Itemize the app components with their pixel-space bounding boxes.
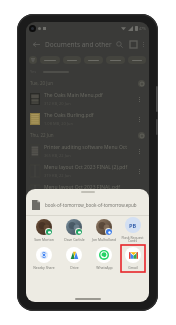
staticText: Flask Request Cards <box>119 235 146 243</box>
staticText: Tue, 20 Jun <box>30 80 54 86</box>
staticText: Menu layout Oct 2023 FINAL (2).pdf <box>44 164 128 171</box>
button[interactable]: More options <box>133 205 145 217</box>
staticText: 47% <box>139 26 146 31</box>
staticText: Printer auditing software Menu Oct 2023.… <box>44 144 133 151</box>
button[interactable] <box>29 56 37 64</box>
staticText: Drive <box>70 265 79 270</box>
button[interactable]: The Oaks Burling.pdf <box>26 109 149 129</box>
staticText: 104 KB, 22 Jun <box>44 233 71 238</box>
button[interactable]: More options <box>133 225 145 237</box>
staticText: PB <box>129 222 137 229</box>
button[interactable] <box>128 56 146 64</box>
staticText: 204 KB, 22 Jun <box>44 213 71 218</box>
button[interactable]: Drive <box>59 246 89 271</box>
button[interactable] <box>106 56 125 64</box>
button[interactable]: Menu layout Oct 2023 FINAL.pdf <box>26 181 149 201</box>
staticText: Menu notes.pdf <box>44 224 82 231</box>
button[interactable]: Gmail <box>119 246 146 271</box>
button[interactable]: Select all <box>138 80 145 87</box>
staticText: 319 KB, 22 Jun <box>44 173 71 178</box>
staticText: The Oaks Burling.pdf <box>44 112 94 119</box>
button[interactable]: Select all <box>138 132 145 139</box>
staticText: 365 KB, 22 Jun <box>44 153 71 158</box>
button[interactable]: More options <box>133 113 145 125</box>
staticText: Jon Mulholland <box>92 237 116 242</box>
staticText: book-of-tomorrow_book-of-tomorrow.epub <box>45 202 137 208</box>
button[interactable]: Jon Mulholland <box>89 219 119 242</box>
staticText: Documents and other <box>45 40 112 49</box>
button[interactable]: Menu sheet v2.pdf <box>26 201 149 221</box>
button[interactable]: More options <box>133 145 145 157</box>
staticText: Thu, 22 Jun <box>30 132 54 138</box>
button[interactable] <box>40 56 60 64</box>
button[interactable]: More options <box>133 93 145 105</box>
button[interactable]: More options <box>140 37 146 51</box>
staticText: The Oaks Main Menu.pdf <box>44 92 103 99</box>
button[interactable]: The Oaks Main Menu.pdf <box>26 89 149 109</box>
staticText: Dave Carlisle <box>64 237 85 242</box>
staticText: Gmail <box>128 265 138 270</box>
button[interactable]: WhatsApp <box>89 246 119 271</box>
button[interactable]: Dave Carlisle <box>59 219 89 242</box>
staticText: 312 KB, 20 Jun <box>44 101 71 106</box>
button[interactable] <box>84 56 103 64</box>
button[interactable]: Switch view <box>126 37 140 51</box>
staticText: Yes <box>30 69 37 74</box>
staticText: Nearby Share <box>33 265 55 270</box>
button[interactable]: PB <box>119 216 146 244</box>
button[interactable]: Search <box>112 37 126 51</box>
button[interactable]: Nearby Share <box>29 246 59 271</box>
button[interactable]: Menu notes.pdf <box>26 221 149 241</box>
button[interactable]: More options <box>133 165 145 177</box>
staticText: Sam Morton <box>34 237 54 242</box>
staticText: Menu layout Oct 2023 FINAL.pdf <box>44 184 120 191</box>
button[interactable]: More options <box>133 185 145 197</box>
staticText: Menu sheet v2.pdf <box>44 204 88 211</box>
staticText: 1.08 MB, 20 Jun <box>44 121 73 126</box>
button[interactable]: Printer auditing software Menu Oct 2023.… <box>26 141 149 161</box>
button[interactable] <box>63 56 81 64</box>
button[interactable]: Sam Morton <box>29 219 59 242</box>
staticText: WhatsApp <box>96 265 113 270</box>
button[interactable]: Back <box>29 37 43 51</box>
button[interactable]: Menu layout Oct 2023 FINAL (2).pdf <box>26 161 149 181</box>
button[interactable]: book-of-tomorrow_book-of-tomorrow.epub <box>26 195 149 215</box>
